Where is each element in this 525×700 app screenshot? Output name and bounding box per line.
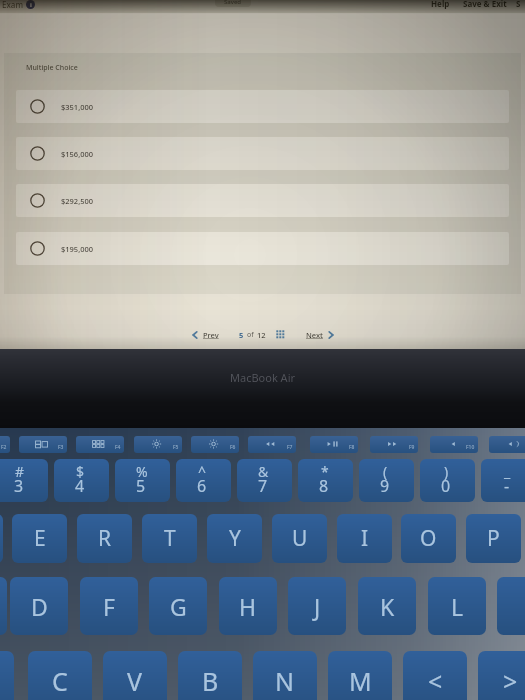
- staticText: $292,500: [61, 196, 94, 206]
- button[interactable]: F: [80, 577, 138, 635]
- staticText: U: [292, 524, 308, 553]
- button[interactable]: F4: [76, 436, 124, 453]
- button[interactable]: F11: [489, 436, 525, 453]
- button[interactable]: H: [219, 577, 277, 635]
- button[interactable]: B: [178, 651, 242, 700]
- staticText: 8: [319, 475, 329, 497]
- staticText: F: [103, 591, 115, 622]
- button[interactable]: $195,000: [16, 232, 509, 265]
- staticText: #: [15, 462, 25, 481]
- button[interactable]: $: [54, 459, 109, 502]
- button[interactable]: C: [28, 651, 92, 700]
- staticText: R: [98, 524, 112, 553]
- staticText: -: [504, 475, 510, 497]
- staticText: F6: [230, 444, 236, 451]
- staticText: ): [444, 462, 449, 481]
- staticText: Exam: [2, 0, 23, 10]
- staticText: $351,000: [61, 102, 94, 112]
- button[interactable]: K: [358, 577, 416, 635]
- staticText: 5: [239, 330, 244, 340]
- button[interactable]: #: [0, 459, 48, 502]
- button[interactable]: O: [401, 514, 456, 563]
- staticText: *: [321, 462, 329, 481]
- staticText: 0: [441, 475, 451, 497]
- staticText: 6: [197, 475, 207, 497]
- staticText: L: [451, 591, 464, 622]
- button[interactable]: (: [359, 459, 414, 502]
- button[interactable]: F2: [0, 436, 10, 453]
- staticText: Saved: [224, 0, 242, 6]
- staticText: F3: [58, 444, 64, 451]
- button[interactable]: F9: [370, 436, 418, 453]
- button[interactable]: M: [328, 651, 392, 700]
- button[interactable]: ^: [176, 459, 231, 502]
- staticText: _: [504, 462, 511, 481]
- staticText: F8: [349, 444, 355, 451]
- button[interactable]: $351,000: [16, 90, 509, 123]
- button[interactable]: $156,000: [16, 137, 509, 170]
- button[interactable]: Save & Exit: [463, 0, 507, 9]
- button[interactable]: <: [403, 651, 467, 700]
- staticText: %: [136, 462, 148, 481]
- button[interactable]: J: [288, 577, 346, 635]
- button[interactable]: F10: [430, 436, 478, 453]
- staticText: 3: [14, 475, 24, 497]
- button[interactable]: Y: [207, 514, 262, 563]
- button[interactable]: U: [272, 514, 327, 563]
- staticText: $195,000: [61, 244, 94, 254]
- button[interactable]: G: [149, 577, 207, 635]
- button[interactable]: F7: [248, 436, 296, 453]
- button[interactable]: D: [10, 577, 68, 635]
- button[interactable]: N: [253, 651, 317, 700]
- staticText: F5: [173, 444, 179, 451]
- button[interactable]: Next: [304, 330, 337, 340]
- button[interactable]: P: [466, 514, 521, 563]
- staticText: F9: [409, 444, 415, 451]
- staticText: F2: [1, 444, 7, 451]
- button[interactable]: F6: [191, 436, 239, 453]
- staticText: MacBook Air: [230, 370, 296, 385]
- button[interactable]: &: [237, 459, 292, 502]
- button[interactable]: L: [428, 577, 486, 635]
- staticText: 9: [380, 475, 390, 497]
- staticText: Next: [306, 330, 323, 340]
- button[interactable]: F5: [134, 436, 182, 453]
- staticText: 7: [258, 475, 268, 497]
- button[interactable]: $292,500: [16, 184, 509, 217]
- staticText: 4: [75, 475, 85, 497]
- staticText: V: [127, 664, 143, 698]
- staticText: F10: [466, 444, 475, 451]
- button[interactable]: Help: [431, 0, 450, 9]
- button[interactable]: Question list: [275, 329, 286, 340]
- staticText: i: [30, 1, 32, 9]
- staticText: Multiple Choice: [26, 63, 78, 73]
- button[interactable]: _: [481, 459, 525, 502]
- staticText: Prev: [203, 330, 219, 340]
- staticText: T: [164, 524, 176, 553]
- button[interactable]: ): [420, 459, 475, 502]
- button[interactable]: Prev: [189, 330, 221, 340]
- staticText: E: [34, 524, 46, 553]
- button[interactable]: >: [478, 651, 525, 700]
- button[interactable]: I: [337, 514, 392, 563]
- staticText: $156,000: [61, 149, 94, 159]
- staticText: 5: [136, 475, 146, 497]
- staticText: 12: [257, 330, 266, 340]
- staticText: J: [314, 591, 321, 622]
- staticText: &: [258, 462, 269, 481]
- staticText: N: [275, 664, 295, 698]
- button[interactable]: R: [77, 514, 132, 563]
- button[interactable]: *: [298, 459, 353, 502]
- button[interactable]: F8: [310, 436, 358, 453]
- staticText: F7: [287, 444, 293, 451]
- staticText: M: [349, 664, 372, 698]
- button[interactable]: F3: [19, 436, 67, 453]
- staticText: K: [380, 591, 395, 622]
- button[interactable]: E: [12, 514, 67, 563]
- button[interactable]: T: [142, 514, 197, 563]
- staticText: Y: [229, 524, 241, 553]
- button[interactable]: %: [115, 459, 170, 502]
- button[interactable]: V: [103, 651, 167, 700]
- staticText: ^: [198, 462, 207, 481]
- staticText: of: [247, 330, 254, 340]
